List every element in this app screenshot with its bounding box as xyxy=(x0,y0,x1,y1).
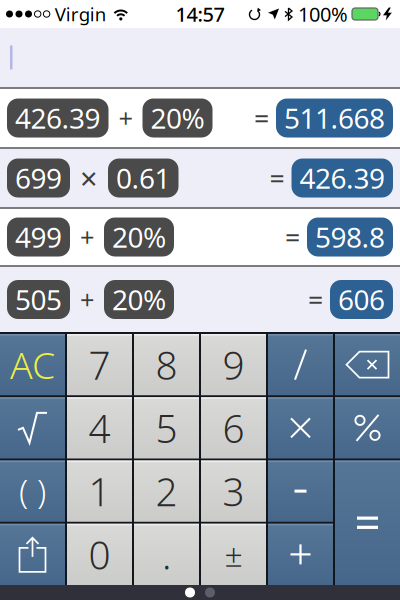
staticText: 20% xyxy=(112,218,166,256)
staticText: + xyxy=(80,220,94,254)
button[interactable]: Square root xyxy=(0,397,65,458)
staticText: 6 xyxy=(222,402,244,453)
staticText: 5 xyxy=(155,402,177,453)
button[interactable]: 511.668 xyxy=(276,98,393,137)
staticText: + xyxy=(80,283,94,316)
staticText: 511.668 xyxy=(284,99,385,137)
button[interactable]: Multiply xyxy=(268,397,333,458)
button[interactable]: 20% xyxy=(104,217,174,256)
button[interactable]: Subtract xyxy=(268,460,333,522)
button[interactable]: Percent xyxy=(335,397,400,458)
staticText: 0 xyxy=(88,529,110,580)
staticText: ) xyxy=(37,469,46,513)
staticText: 426.39 xyxy=(299,159,385,197)
staticText: 426.39 xyxy=(15,99,100,137)
button[interactable]: 598.8 xyxy=(307,217,393,256)
button[interactable]: ± xyxy=(201,524,266,585)
staticText: 14:57 xyxy=(175,1,224,27)
staticText: Virgin xyxy=(55,2,107,26)
staticText: 7 xyxy=(88,339,110,390)
staticText: 9 xyxy=(222,339,244,390)
button[interactable]: 499 xyxy=(7,217,70,256)
staticText: 20% xyxy=(150,99,204,137)
staticText: = xyxy=(285,219,300,255)
button[interactable]: 4 xyxy=(67,397,132,458)
staticText: . xyxy=(162,529,171,580)
staticText: 699 xyxy=(15,159,62,197)
staticText: = xyxy=(269,160,284,196)
button[interactable]: 699 xyxy=(7,158,70,197)
staticText: + xyxy=(118,101,132,135)
button[interactable]: 8 xyxy=(134,334,199,395)
staticText: × xyxy=(80,158,98,198)
staticText: 2 xyxy=(155,465,177,517)
button[interactable]: 7 xyxy=(67,334,132,395)
button[interactable]: 20% xyxy=(142,98,212,137)
button[interactable]: 606 xyxy=(330,280,393,319)
button[interactable]: 2 xyxy=(134,460,199,522)
staticText: = xyxy=(254,100,269,136)
button[interactable]: 505 xyxy=(7,280,70,319)
button[interactable]: 426.39 xyxy=(291,158,393,197)
staticText: 4 xyxy=(88,402,110,453)
staticText: 20% xyxy=(112,281,166,318)
button[interactable]: Equals xyxy=(335,460,400,585)
staticText: 598.8 xyxy=(315,218,385,256)
button[interactable]: Share xyxy=(0,524,65,585)
button[interactable]: Delete xyxy=(335,334,400,395)
staticText: 505 xyxy=(15,281,62,318)
button[interactable]: 9 xyxy=(201,334,266,395)
staticText: 499 xyxy=(15,218,62,256)
button[interactable]: 3 xyxy=(201,460,266,522)
staticText: AC xyxy=(10,340,55,389)
button[interactable]: 20% xyxy=(104,280,174,319)
button[interactable]: 0 xyxy=(67,524,132,585)
staticText: ± xyxy=(224,533,242,576)
staticText: 606 xyxy=(338,281,385,318)
staticText: 100% xyxy=(298,1,348,27)
staticText: ( xyxy=(19,469,28,513)
staticText: = xyxy=(308,282,323,317)
button[interactable]: 5 xyxy=(134,397,199,458)
button[interactable]: . xyxy=(134,524,199,585)
button[interactable]: Parentheses xyxy=(0,460,65,522)
staticText: 0.61 xyxy=(116,159,170,197)
staticText: 1 xyxy=(88,465,110,517)
button[interactable]: 0.61 xyxy=(108,158,178,197)
staticText: 3 xyxy=(222,465,244,517)
button[interactable]: 6 xyxy=(201,397,266,458)
staticText: 8 xyxy=(155,339,177,390)
button[interactable]: 1 xyxy=(67,460,132,522)
button[interactable]: Divide xyxy=(268,334,333,395)
button[interactable]: AC xyxy=(0,334,65,395)
button[interactable]: 426.39 xyxy=(7,98,108,137)
button[interactable]: Add xyxy=(268,524,333,585)
